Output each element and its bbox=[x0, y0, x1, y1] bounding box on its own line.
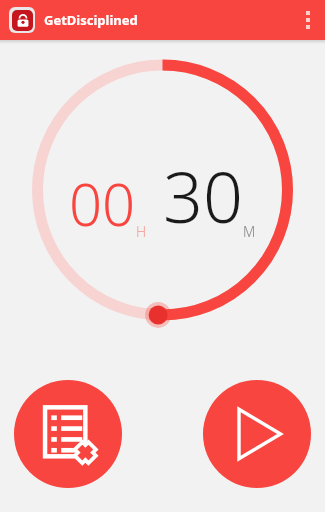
staticText: 00 bbox=[69, 164, 136, 243]
staticText: 30 bbox=[163, 148, 243, 243]
button[interactable]: More options bbox=[291, 0, 325, 40]
staticText: GetDisciplined bbox=[44, 11, 138, 29]
button[interactable]: Clear list bbox=[14, 380, 122, 488]
button[interactable]: Start timer bbox=[203, 380, 311, 488]
button[interactable]: App icon bbox=[9, 7, 35, 33]
staticText: H bbox=[136, 222, 147, 241]
staticText: M bbox=[243, 222, 256, 241]
